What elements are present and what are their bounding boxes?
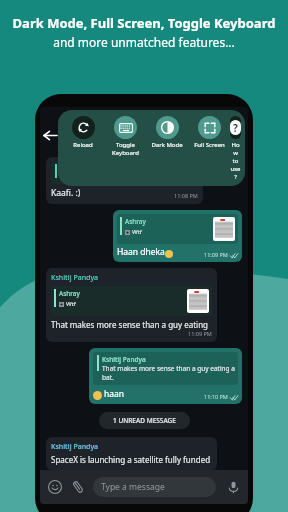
staticText: 11:08 PM [174,192,198,199]
button[interactable]: Kshitij Pandya [46,437,217,470]
staticText: 11:09 PM [204,251,228,258]
staticText: Haan dheka [117,246,165,258]
staticText: 1 UNREAD MESSAGE [113,416,176,425]
staticText: and more unmatched features... [0,34,288,50]
staticText: ? [233,121,238,135]
staticText: 11:09 PM [188,330,212,337]
staticText: How to use? [230,141,241,181]
staticText: Kshitij Pandya [102,355,146,364]
staticText: SpaceX is launching a satellite fully fu… [51,454,212,465]
staticText: Type a message [101,481,165,493]
staticText: 11:10 PM [204,393,228,400]
button[interactable]: Back [42,127,59,144]
staticText: Kaafi. :) [51,187,81,199]
button[interactable]: Kshitij Pandya [46,268,217,342]
button[interactable]: Ashray [113,210,242,262]
staticText: Dark Mode, Full Screen, Toggle Keyboard [4,14,284,32]
staticText: Ashray [59,289,80,298]
button[interactable]: Full Screen [188,115,230,149]
staticText: Ashray [125,217,146,226]
staticText: That makes more sense than a guy eating … [102,364,235,382]
staticText: Full Screen [194,141,225,149]
staticText: Kshitij Pandya [51,273,99,283]
staticText: Reload [73,141,93,149]
button[interactable]: Toggle Keyboard [104,115,146,157]
button[interactable]: Kshitij Pandya [46,157,203,204]
staticText: haan [104,388,125,400]
button[interactable]: Kshitij Pandya [89,348,242,404]
staticText: Kshitij Pandya [51,442,99,452]
button[interactable]: Type a message [93,477,216,497]
button[interactable]: Reload [62,115,104,149]
button[interactable]: Attach [69,478,87,496]
button[interactable]: 1 UNREAD MESSAGE [99,412,190,429]
staticText: Wtf [66,300,76,308]
button[interactable]: ? [230,115,241,181]
staticText: That makes more sense than a guy eating [51,319,209,330]
button[interactable]: Emoji [46,478,64,496]
staticText: Dark Mode [151,141,183,149]
staticText: Wtf [132,228,142,236]
staticText: Toggle Keyboard [112,141,139,157]
button[interactable]: Dark Mode [146,115,188,149]
button[interactable]: Voice message [224,478,242,496]
